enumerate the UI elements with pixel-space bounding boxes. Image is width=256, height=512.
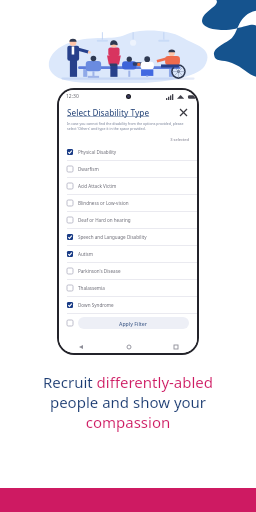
staticText: Dwarfism <box>78 166 99 172</box>
staticText: Acid Attack Victim <box>78 183 117 189</box>
button[interactable]: Physical Disability <box>59 144 197 160</box>
button[interactable]: Deaf or Hard on hearing <box>59 212 197 228</box>
staticText: Down Syndrome <box>78 302 114 308</box>
staticText: 3 selected <box>67 137 189 142</box>
button[interactable]: Home <box>123 341 134 352</box>
button[interactable]: Autism <box>59 246 197 262</box>
button[interactable]: Recent apps <box>170 341 181 352</box>
button[interactable]: Dwarfism <box>59 161 197 177</box>
staticText: In case you cannot find the disability f… <box>67 121 187 131</box>
staticText: Autism <box>78 251 94 257</box>
button[interactable]: Acid Attack Victim <box>59 178 197 194</box>
staticText: Recruit differently-abled people and sho… <box>6 372 250 432</box>
staticText: Parkinson's Disease <box>78 268 121 274</box>
staticText: 12:30 <box>66 93 79 100</box>
button[interactable]: Speech and Language Disability <box>59 229 197 245</box>
button[interactable]: Apply Filter <box>78 317 189 329</box>
button[interactable]: Close <box>177 106 189 118</box>
staticText: Speech and Language Disability <box>78 234 147 240</box>
button[interactable]: Blindness or Low-vision <box>59 195 197 211</box>
button[interactable]: Down Syndrome <box>59 297 197 313</box>
staticText: Blindness or Low-vision <box>78 200 129 206</box>
button[interactable]: Thalassemia <box>59 280 197 296</box>
staticText: Thalassemia <box>78 285 105 291</box>
button[interactable]: Back <box>75 341 86 352</box>
staticText: Physical Disability <box>78 149 117 155</box>
button[interactable]: Parkinson's Disease <box>59 263 197 279</box>
staticText: Apply Filter <box>119 320 148 327</box>
staticText: Deaf or Hard on hearing <box>78 217 131 223</box>
staticText: Select Disability Type <box>67 107 150 118</box>
